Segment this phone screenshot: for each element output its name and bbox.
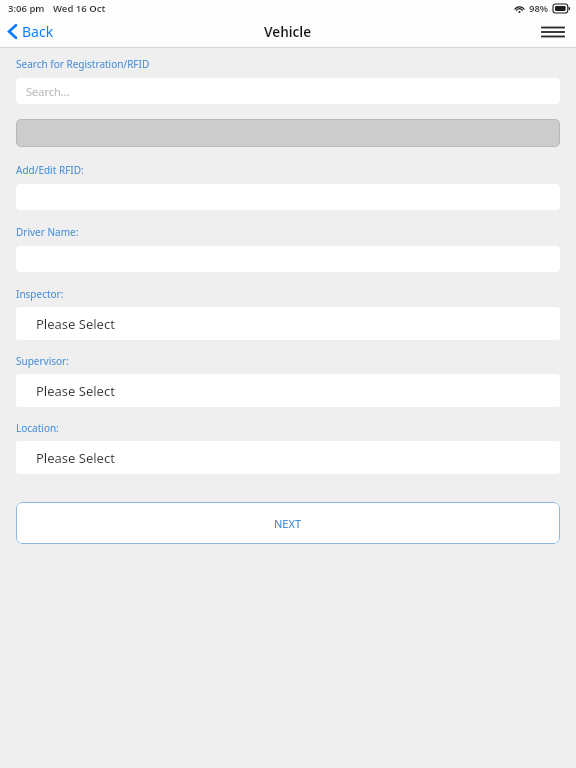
button[interactable]: Please Select bbox=[16, 374, 560, 407]
staticText: Inspector: bbox=[16, 287, 64, 301]
staticText: Search for Registration/RFID bbox=[16, 57, 150, 71]
button[interactable]: NEXT bbox=[16, 502, 560, 544]
staticText: Please Select bbox=[36, 449, 115, 467]
staticText: Back bbox=[22, 22, 54, 41]
staticText: Please Select bbox=[36, 315, 115, 333]
staticText: Search... bbox=[26, 84, 70, 99]
button[interactable]: Back bbox=[0, 18, 64, 45]
staticText: Please Select bbox=[36, 382, 115, 400]
button[interactable]: Please Select bbox=[16, 441, 560, 474]
staticText: Location: bbox=[16, 421, 59, 435]
button[interactable]: Please Select bbox=[16, 307, 560, 340]
staticText: Wed 16 Oct bbox=[53, 2, 106, 15]
staticText: Supervisor: bbox=[16, 354, 69, 368]
staticText: 98% bbox=[529, 2, 549, 15]
button[interactable]: Scan bbox=[16, 119, 560, 147]
staticText: 3:06 pm bbox=[8, 2, 45, 15]
staticText: Driver Name: bbox=[16, 225, 79, 239]
staticText: Add/Edit RFID: bbox=[16, 163, 84, 177]
staticText: NEXT bbox=[274, 516, 302, 531]
staticText: Vehicle bbox=[264, 23, 312, 41]
button[interactable]: Search... bbox=[16, 78, 560, 104]
button[interactable]: Menu bbox=[530, 19, 576, 45]
